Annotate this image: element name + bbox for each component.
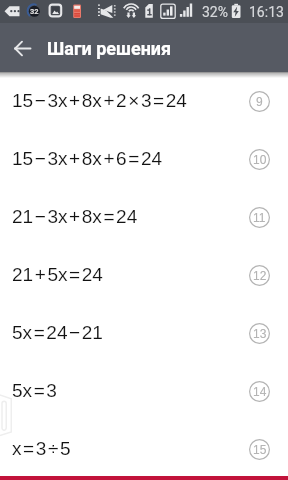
staticText: 21 − 3x + 8x = 24 (12, 206, 249, 227)
staticText: 12 (253, 269, 267, 282)
staticText: 16:13 (249, 4, 284, 20)
button[interactable]: 21 + 5x = 24 (0, 246, 288, 304)
button[interactable]: 21 − 3x + 8x = 24 (0, 188, 288, 246)
button[interactable]: Back (0, 23, 44, 72)
button[interactable]: 5x = 3 (0, 362, 288, 420)
staticText: 5x = 3 (12, 380, 249, 401)
staticText: 13 (253, 327, 267, 340)
staticText: 15 − 3x + 8x + 6 = 24 (12, 148, 249, 169)
staticText: 9 (256, 95, 263, 108)
button[interactable]: 15 − 3x + 8x + 2 × 3 = 24 (0, 72, 288, 130)
staticText: 15 (253, 443, 267, 456)
button[interactable]: 5x = 24 − 21 (0, 304, 288, 362)
staticText: 14 (253, 385, 267, 398)
staticText: 32% (202, 4, 228, 20)
staticText: 11 (253, 211, 266, 224)
staticText: x = 3 ÷ 5 (12, 438, 249, 459)
button[interactable]: 15 − 3x + 8x + 6 = 24 (0, 130, 288, 188)
staticText: 5x = 24 − 21 (12, 322, 249, 343)
button[interactable]: x = 3 ÷ 5 (0, 420, 288, 478)
staticText: 32 (30, 7, 39, 16)
staticText: 10 (253, 153, 267, 166)
staticText: Шаги решения (47, 38, 172, 59)
staticText: 15 − 3x + 8x + 2 × 3 = 24 (12, 90, 249, 111)
staticText: 21 + 5x = 24 (12, 264, 249, 285)
